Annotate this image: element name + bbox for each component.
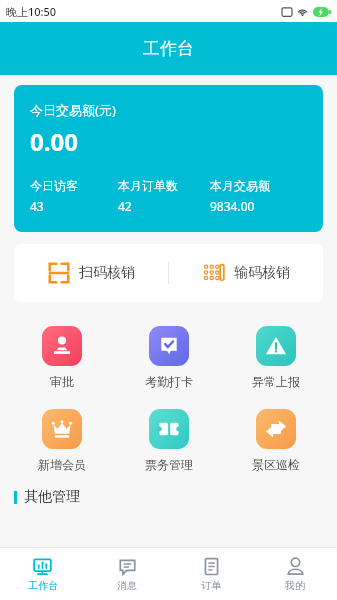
button[interactable]: 景区巡检 (222, 407, 329, 474)
staticText: 工作台 (143, 38, 194, 59)
staticText: 今日交易额(元) (30, 101, 116, 119)
button[interactable]: 今日交易额(元) (14, 85, 323, 232)
staticText: 今日访客 (30, 178, 78, 193)
staticText: 消息 (117, 579, 137, 592)
staticText: 考勤打卡 (145, 374, 193, 389)
staticText: 新增会员 (38, 457, 86, 472)
staticText: 本月交易额 (210, 178, 270, 193)
button[interactable]: 输码核销 (169, 244, 323, 302)
button[interactable]: 扫码核销 (14, 244, 168, 302)
button[interactable]: 消息 (85, 548, 169, 600)
staticText: 订单 (201, 579, 221, 592)
button[interactable]: 我的 (253, 548, 337, 600)
button[interactable]: 异常上报 (222, 324, 329, 391)
staticText: 工作台 (28, 579, 58, 592)
button[interactable]: 票务管理 (115, 407, 222, 474)
button[interactable]: 审批 (8, 324, 115, 391)
staticText: 9834.00 (210, 198, 255, 214)
staticText: 43 (30, 198, 44, 214)
staticText: 输码核销 (234, 264, 290, 282)
staticText: 42 (118, 198, 132, 214)
staticText: 票务管理 (145, 457, 193, 472)
staticText: 其他管理 (24, 488, 80, 506)
staticText: 0.00 (30, 125, 78, 158)
staticText: 晚上10:50 (6, 4, 57, 19)
button[interactable]: 考勤打卡 (115, 324, 222, 391)
staticText: 审批 (50, 374, 74, 389)
staticText: 本月订单数 (118, 178, 178, 193)
staticText: 扫码核销 (79, 264, 135, 282)
staticText: 景区巡检 (252, 457, 300, 472)
button[interactable]: 新增会员 (8, 407, 115, 474)
button[interactable]: 工作台 (0, 548, 85, 600)
button[interactable]: 订单 (169, 548, 253, 600)
staticText: 我的 (285, 579, 305, 592)
staticText: 异常上报 (252, 374, 300, 389)
